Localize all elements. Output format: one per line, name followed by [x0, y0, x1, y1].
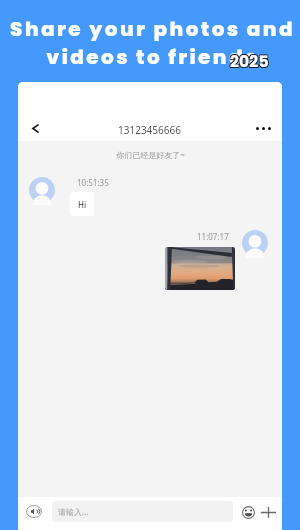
staticText: 请输入...	[58, 506, 89, 517]
button[interactable]: Emoji	[240, 504, 257, 521]
button[interactable]: Voice input	[24, 503, 44, 520]
staticText: 2025	[229, 51, 268, 73]
button[interactable]: Add attachment	[259, 503, 277, 521]
staticText: 2025	[230, 52, 269, 74]
staticText: 2025	[231, 52, 270, 74]
button[interactable]: Hi	[70, 192, 94, 216]
button[interactable]: Back	[25, 118, 45, 138]
staticText: Share your photos and	[10, 15, 295, 43]
staticText: 2025	[229, 52, 268, 74]
staticText: Hi	[78, 199, 87, 210]
staticText: 2025	[230, 50, 269, 72]
staticText: videos to friends	[46, 43, 259, 71]
staticText: 11:07:17	[197, 231, 229, 242]
staticText: 2025	[230, 51, 269, 73]
staticText: 2025	[231, 50, 270, 72]
staticText: 你们已经是好友了~	[116, 149, 185, 160]
button[interactable]: 请输入...	[52, 501, 233, 522]
staticText: 2025	[231, 51, 270, 73]
staticText: 10:51:35	[77, 177, 109, 188]
button[interactable]: Photo	[165, 247, 235, 290]
button[interactable]: More options	[252, 119, 274, 137]
staticText: 13123456666	[118, 123, 181, 137]
staticText: 2025	[229, 50, 268, 72]
